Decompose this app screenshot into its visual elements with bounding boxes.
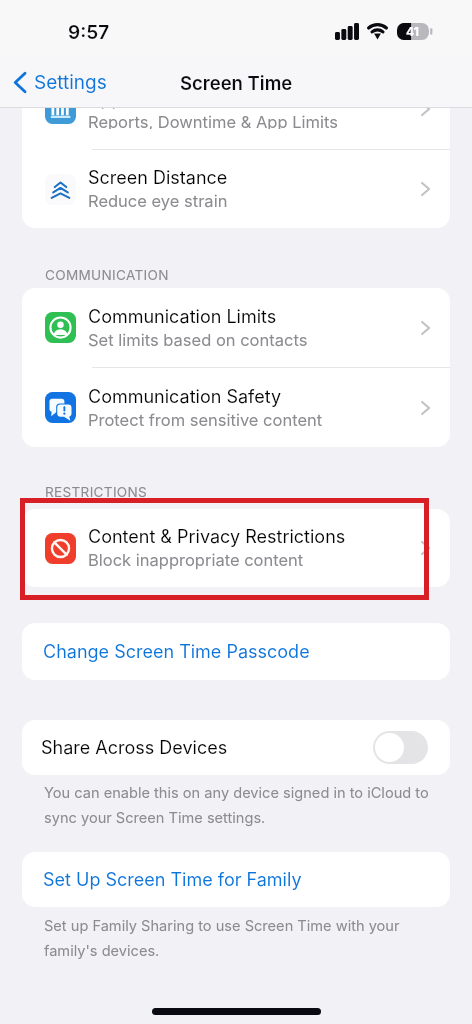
staticText: Screen Time bbox=[180, 72, 293, 94]
staticText: COMMUNICATION bbox=[45, 267, 169, 283]
staticText: Set Up Screen Time for Family bbox=[43, 869, 302, 891]
staticText: Settings bbox=[34, 71, 107, 94]
staticText: Communication Limits bbox=[88, 306, 277, 328]
staticText: Set up Family Sharing to use Screen Time… bbox=[44, 917, 430, 960]
staticText: 41 bbox=[406, 24, 419, 39]
button[interactable]: Set Up Screen Time for Family bbox=[22, 852, 450, 907]
button[interactable]: Change Screen Time Passcode bbox=[22, 623, 450, 680]
staticText: Reports, Downtime & App Limits bbox=[88, 112, 338, 129]
staticText: Communication Safety bbox=[88, 386, 282, 408]
button[interactable]: App Limits bbox=[22, 108, 450, 149]
staticText: Screen Distance bbox=[88, 167, 228, 189]
button[interactable]: Share Across Devices bbox=[22, 720, 450, 775]
staticText: 9:57 bbox=[68, 21, 110, 44]
button[interactable]: Settings bbox=[0, 65, 117, 100]
staticText: Content & Privacy Restrictions bbox=[88, 526, 346, 548]
staticText: Block inappropriate content bbox=[88, 550, 304, 570]
button[interactable]: Communication Safety bbox=[22, 368, 450, 447]
staticText: App Limits bbox=[88, 108, 178, 110]
button[interactable]: Communication Limits bbox=[22, 288, 450, 367]
staticText: Reduce eye strain bbox=[88, 191, 228, 211]
staticText: Set limits based on contacts bbox=[88, 330, 308, 350]
staticText: Share Across Devices bbox=[41, 737, 373, 759]
staticText: Change Screen Time Passcode bbox=[43, 641, 310, 663]
staticText: RESTRICTIONS bbox=[45, 484, 148, 500]
staticText: You can enable this on any device signed… bbox=[44, 784, 450, 827]
staticText: Protect from sensitive content bbox=[88, 410, 323, 430]
button[interactable]: Screen Distance bbox=[22, 150, 450, 228]
button[interactable]: Content & Privacy Restrictions bbox=[22, 509, 450, 587]
